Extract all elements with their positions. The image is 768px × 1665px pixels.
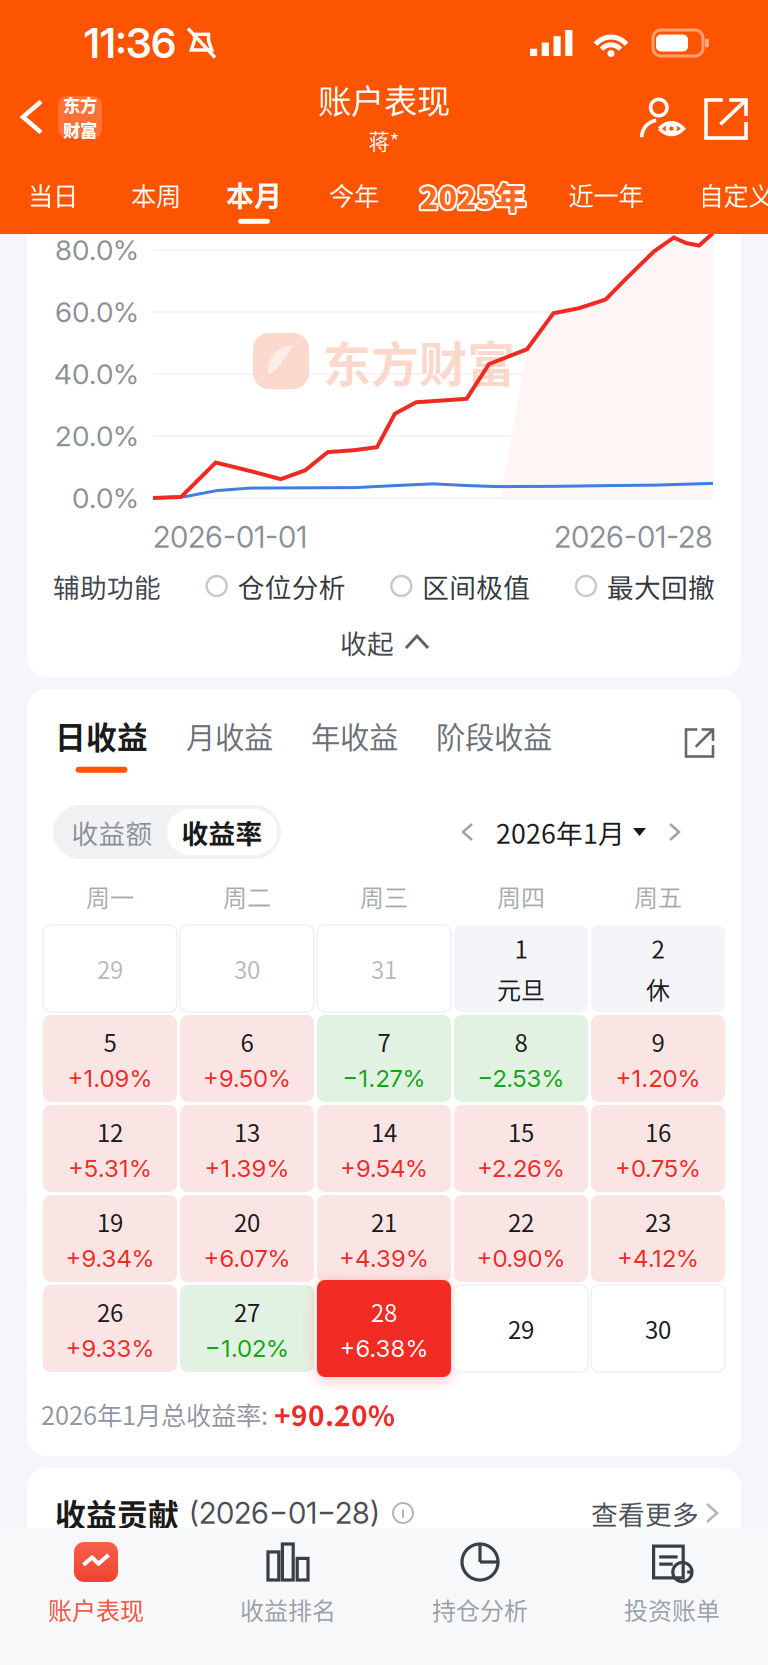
button[interactable]: 30	[180, 925, 314, 1012]
button[interactable]: 持仓分析	[384, 1528, 576, 1665]
button[interactable]: 19	[43, 1195, 177, 1282]
staticText: 16	[645, 1114, 671, 1149]
button[interactable]: 9	[591, 1015, 725, 1102]
button[interactable]: 投资账单	[576, 1528, 768, 1665]
staticText: 8	[514, 1024, 527, 1059]
staticText: 0.0%	[72, 481, 139, 515]
button[interactable]: 20	[180, 1195, 314, 1282]
button[interactable]: 16	[591, 1105, 725, 1192]
staticText: (2026−01−28)	[189, 1495, 380, 1531]
staticText: 2026年1月	[496, 813, 625, 851]
staticText: 15	[508, 1114, 534, 1149]
button[interactable]: 2	[591, 925, 725, 1012]
staticText: 2025年	[419, 172, 526, 216]
staticText: 近一年	[568, 176, 643, 213]
button[interactable]: 账户	[631, 91, 692, 159]
button[interactable]: 本月	[206, 164, 302, 228]
staticText: 27	[234, 1294, 260, 1329]
button[interactable]: 28	[317, 1280, 451, 1377]
staticText: 29	[508, 1311, 534, 1346]
staticText: 周五	[634, 879, 682, 913]
button[interactable]: 22	[454, 1195, 588, 1282]
staticText: 蒋*	[368, 125, 399, 156]
button[interactable]: 收益排名	[192, 1528, 384, 1665]
staticText: 财富	[63, 117, 97, 142]
button[interactable]: 29	[43, 925, 177, 1012]
button[interactable]: 15	[454, 1105, 588, 1192]
staticText: 账户表现	[48, 1592, 144, 1627]
staticText: +4.39%	[339, 1244, 429, 1273]
button[interactable]: 5	[43, 1015, 177, 1102]
staticText: +6.07%	[203, 1244, 290, 1273]
button[interactable]: 13	[180, 1105, 314, 1192]
button[interactable]: 月收益	[186, 714, 273, 772]
button[interactable]: 自定义	[672, 164, 768, 228]
button[interactable]: 仓位分析	[206, 567, 346, 605]
button[interactable]: 2025年	[406, 164, 540, 228]
button[interactable]: 1	[454, 925, 588, 1012]
button[interactable]: 账户表现	[0, 1528, 192, 1665]
button[interactable]: 6	[180, 1015, 314, 1102]
button[interactable]: 31	[317, 925, 451, 1012]
button[interactable]: 年收益	[311, 714, 398, 772]
staticText: 东方财富	[323, 326, 515, 396]
staticText: 周一	[86, 879, 134, 913]
button[interactable]: 今年	[302, 164, 406, 228]
button[interactable]: 收起	[27, 614, 741, 670]
staticText: 休	[646, 971, 670, 1006]
staticText: 2025年	[421, 174, 528, 218]
button[interactable]: 上个月	[451, 810, 484, 854]
staticText: 当日	[28, 176, 78, 213]
staticText: +90.20%	[274, 1394, 395, 1434]
staticText: 29	[97, 951, 123, 986]
staticText: 周二	[223, 879, 271, 913]
button[interactable]: 阶段收益	[436, 714, 552, 772]
button[interactable]: 12	[43, 1105, 177, 1192]
button[interactable]: 2026年1月	[496, 810, 646, 854]
staticText: 9	[651, 1024, 664, 1059]
staticText: 阶段收益	[436, 714, 552, 757]
staticText: 20	[234, 1204, 260, 1239]
staticText: 28	[371, 1294, 397, 1329]
staticText: 30	[234, 951, 260, 986]
button[interactable]: 分享	[676, 719, 723, 766]
staticText: 2025年	[417, 174, 524, 218]
button[interactable]: 最大回撤	[575, 567, 715, 605]
staticText: +0.90%	[476, 1244, 565, 1273]
button[interactable]: 8	[454, 1015, 588, 1102]
staticText: +9.54%	[340, 1154, 428, 1183]
button[interactable]: 14	[317, 1105, 451, 1192]
staticText: 20.0%	[55, 419, 139, 453]
button[interactable]: 30	[591, 1285, 725, 1372]
button[interactable]: 23	[591, 1195, 725, 1282]
button[interactable]: 近一年	[540, 164, 672, 228]
staticText: 60.0%	[55, 295, 139, 329]
button[interactable]: 分享	[698, 91, 754, 159]
button[interactable]: 返回 东方财富	[0, 91, 102, 159]
button[interactable]: 区间极值	[390, 567, 530, 605]
button[interactable]: 21	[317, 1195, 451, 1282]
staticText: 元旦	[497, 971, 545, 1006]
button[interactable]: 27	[180, 1285, 314, 1372]
staticText: 周四	[497, 879, 545, 913]
staticText: 2026年1月总收益率:	[41, 1396, 274, 1432]
staticText: 30	[645, 1311, 671, 1346]
staticText: 21	[371, 1204, 397, 1239]
button[interactable]: 本周	[106, 164, 206, 228]
button[interactable]: 查看更多	[591, 1482, 717, 1544]
staticText: 东方	[63, 92, 97, 117]
staticText: 今年	[329, 176, 379, 213]
button[interactable]: 日收益	[55, 713, 148, 773]
button[interactable]: 29	[454, 1285, 588, 1372]
staticText: 2026-01-01	[153, 519, 307, 555]
button[interactable]: 下个月	[658, 810, 691, 854]
button[interactable]: 收益额	[57, 809, 167, 855]
staticText: +1.39%	[204, 1154, 289, 1183]
staticText: −2.53%	[477, 1064, 564, 1093]
staticText: 2025年	[421, 175, 528, 220]
staticText: 23	[645, 1204, 671, 1239]
button[interactable]: 26	[43, 1285, 177, 1372]
button[interactable]: 收益率	[167, 809, 277, 855]
button[interactable]: 当日	[0, 164, 106, 228]
button[interactable]: 7	[317, 1015, 451, 1102]
